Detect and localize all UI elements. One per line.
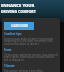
staticText: Lorem ipsum dolor sit amet, consectetur … — [4, 37, 58, 46]
staticText: Duis autem vel eum iriure dolor. — [4, 69, 43, 72]
staticText: ENHANCE YOUR — [1, 3, 35, 9]
button[interactable]: Comfort tips — [4, 32, 58, 46]
staticText: DRIVING COMFORT — [1, 9, 36, 14]
staticText: LEARN MORE — [11, 24, 28, 28]
staticText: Ut wisi enim ad minim veniam, quis nostr… — [4, 53, 58, 62]
staticText: Seats — [4, 48, 12, 52]
button[interactable]: LEARN MORE — [4, 22, 34, 30]
button[interactable]: Seats — [4, 48, 58, 62]
staticText: Climate — [4, 64, 15, 68]
staticText: Comfort tips — [4, 32, 22, 36]
button[interactable]: Climate — [4, 64, 58, 72]
